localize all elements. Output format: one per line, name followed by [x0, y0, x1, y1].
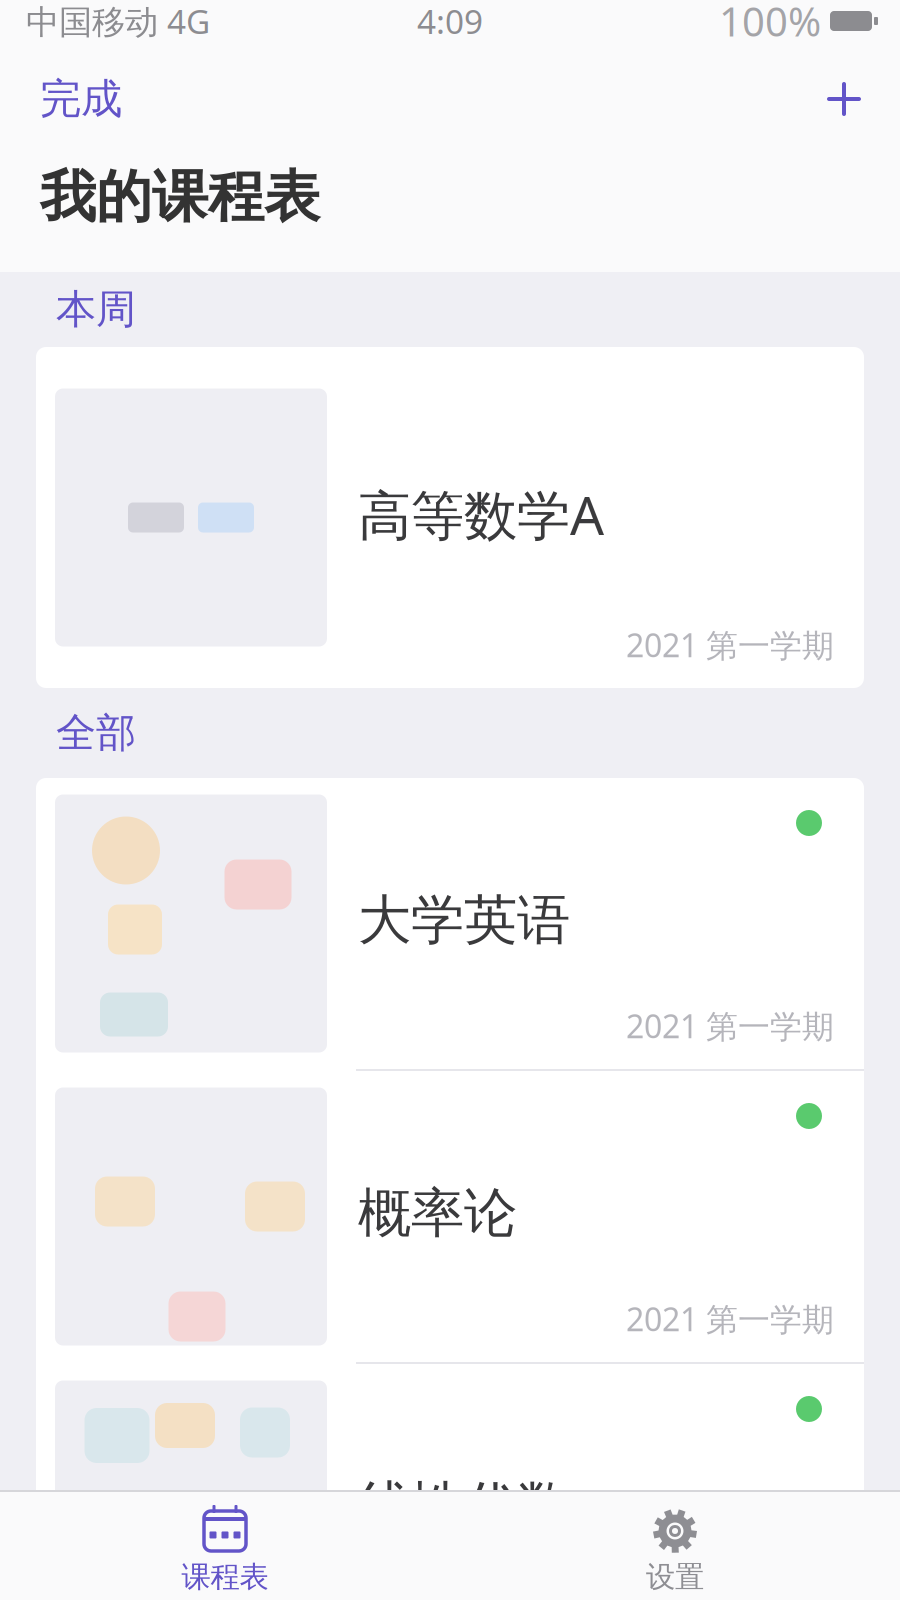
button[interactable]: 线性代数: [36, 1364, 864, 1600]
button[interactable]: 完成: [0, 48, 150, 150]
button[interactable]: 大学英语: [36, 778, 864, 1069]
staticText: 高等数学A: [358, 479, 604, 550]
button[interactable]: 设置: [450, 1492, 900, 1600]
staticText: 中国移动 4G: [26, 0, 210, 43]
staticText: 线性代数: [358, 1473, 570, 1539]
staticText: 2021 第一学期: [626, 1297, 834, 1340]
staticText: 2021 第一学期: [626, 623, 834, 666]
staticText: 100%: [719, 0, 821, 47]
staticText: 全部: [56, 708, 136, 757]
staticText: 我的课程表: [40, 163, 320, 231]
button[interactable]: 课程表: [0, 1492, 450, 1600]
staticText: 本周: [56, 285, 136, 334]
button[interactable]: 概率论: [36, 1071, 864, 1362]
button[interactable]: 添加: [794, 48, 900, 150]
staticText: 2021 第一学期: [626, 1004, 834, 1047]
staticText: 大学英语: [358, 887, 570, 953]
staticText: 概率论: [358, 1180, 517, 1246]
button[interactable]: 高等数学A: [36, 347, 864, 688]
staticText: 完成: [40, 74, 122, 124]
staticText: 4:09: [417, 0, 483, 43]
staticText: 设置: [646, 1559, 704, 1595]
staticText: 课程表: [181, 1559, 268, 1595]
